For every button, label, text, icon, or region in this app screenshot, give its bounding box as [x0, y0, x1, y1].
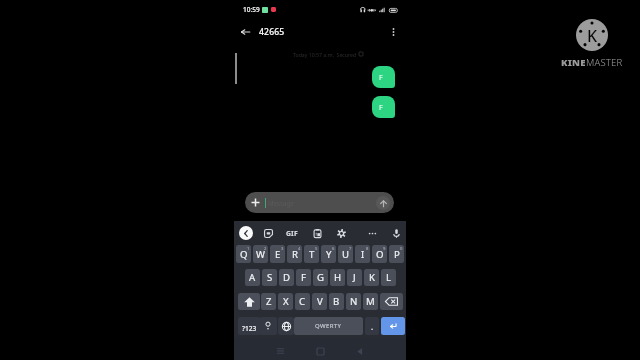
button[interactable]: X [278, 293, 293, 310]
staticText: 2 [264, 246, 267, 252]
staticText: Y [326, 248, 332, 261]
button[interactable]: clipboard [310, 226, 324, 240]
staticText: B [333, 295, 340, 308]
staticText: Today 10:57 a.m. Secured [293, 51, 357, 58]
staticText: G [317, 271, 324, 284]
button[interactable]: Recents [272, 343, 288, 359]
button[interactable]: sticker [261, 226, 275, 240]
staticText: L [386, 271, 392, 284]
button[interactable]: more [365, 226, 379, 240]
button[interactable]: R [287, 245, 302, 263]
staticText: F [379, 73, 383, 83]
button[interactable]: F [372, 66, 395, 88]
button[interactable]: Back [352, 343, 368, 359]
staticText: I [361, 248, 365, 261]
button[interactable]: Y [321, 245, 336, 263]
button[interactable]: Shift [238, 293, 260, 310]
button[interactable]: Emoji [259, 317, 277, 335]
button[interactable]: J [347, 269, 362, 286]
staticText: W [256, 248, 265, 261]
button[interactable]: D [279, 269, 294, 286]
staticText: U [342, 248, 350, 261]
button[interactable]: ?123 [238, 317, 260, 335]
staticText: 6 [332, 246, 335, 252]
staticText: E [275, 248, 281, 261]
staticText: X [283, 295, 289, 308]
button[interactable]: Home [312, 343, 328, 359]
button[interactable]: Q [236, 245, 251, 263]
button[interactable]: W [253, 245, 268, 263]
staticText: F [379, 103, 383, 113]
button[interactable]: F [296, 269, 311, 286]
button[interactable]: S [262, 269, 277, 286]
staticText: MASTER [586, 56, 623, 69]
button[interactable]: C [295, 293, 310, 310]
button[interactable]: Backspace [380, 293, 403, 310]
staticText: . [371, 321, 374, 332]
button[interactable]: settings [334, 226, 348, 240]
staticText: C [299, 295, 306, 308]
button[interactable]: mic [389, 226, 403, 240]
button[interactable]: Message [245, 192, 394, 213]
button[interactable]: M [363, 293, 378, 310]
staticText: V [317, 295, 323, 308]
staticText: M [366, 295, 375, 308]
button[interactable]: T [304, 245, 319, 263]
button[interactable]: Send [376, 196, 390, 210]
staticText: 42665 [259, 26, 285, 38]
button[interactable]: K [364, 269, 379, 286]
button[interactable]: V [312, 293, 327, 310]
staticText: F [301, 271, 306, 284]
staticText: O [376, 248, 384, 261]
button[interactable]: O [372, 245, 387, 263]
button[interactable]: P [389, 245, 404, 263]
staticText: 4 [298, 246, 301, 252]
staticText: R [292, 248, 298, 261]
button[interactable]: More options [384, 21, 403, 42]
staticText: H [334, 271, 342, 284]
button[interactable]: H [330, 269, 345, 286]
staticText: P [394, 248, 400, 261]
staticText: N [350, 295, 358, 308]
staticText: 5 [315, 246, 318, 252]
button[interactable]: QWERTY [294, 317, 363, 335]
staticText: 9 [383, 246, 386, 252]
staticText: 8 [366, 246, 369, 252]
staticText: 0 [400, 246, 403, 252]
staticText: A [249, 271, 256, 284]
button[interactable]: G [313, 269, 328, 286]
button[interactable]: A [245, 269, 260, 286]
button[interactable]: Enter [381, 317, 405, 335]
button[interactable]: F [372, 96, 395, 118]
button[interactable]: Back [236, 22, 254, 41]
button[interactable]: I [355, 245, 370, 263]
staticText: J [353, 271, 356, 284]
button[interactable]: . [365, 317, 379, 335]
staticText: 1 [247, 246, 250, 252]
staticText: S [267, 271, 273, 284]
button[interactable]: GIF [281, 225, 303, 241]
staticText: T [309, 248, 315, 261]
staticText: GIF [286, 229, 298, 238]
button[interactable]: Collapse keyboard toolbar [239, 226, 253, 240]
button[interactable]: B [329, 293, 344, 310]
staticText: 3 [281, 246, 284, 252]
button[interactable]: L [381, 269, 396, 286]
staticText: 10:59 [243, 5, 260, 14]
staticText: K [369, 271, 375, 284]
staticText: KINE [561, 56, 586, 69]
button[interactable]: U [338, 245, 353, 263]
staticText: Q [240, 248, 248, 261]
staticText: K [587, 25, 598, 47]
button[interactable]: Z [261, 293, 276, 310]
staticText: QWERTY [315, 322, 342, 330]
staticText: ?123 [242, 324, 257, 333]
staticText: 7 [349, 246, 352, 252]
staticText: D [283, 271, 291, 284]
button[interactable]: E [270, 245, 285, 263]
button[interactable]: N [346, 293, 361, 310]
button[interactable]: Change language [278, 317, 294, 335]
staticText: Z [266, 295, 272, 308]
